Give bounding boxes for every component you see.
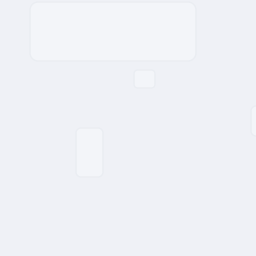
- button[interactable]: More: [251, 106, 256, 136]
